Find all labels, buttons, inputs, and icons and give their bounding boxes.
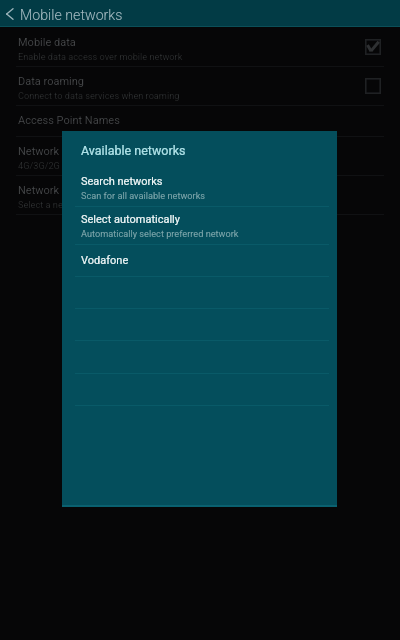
staticText: Mobile data: [18, 36, 76, 49]
staticText: Connect to data services when roaming: [18, 90, 180, 101]
button[interactable]: Unchecked checkbox: [362, 75, 384, 97]
button[interactable]: Access Point Names: [0, 106, 400, 136]
staticText: Automatically select preferred network: [81, 228, 239, 239]
staticText: Data roaming: [18, 75, 84, 88]
button[interactable]: Data roaming: [0, 67, 400, 105]
staticText: Scan for all available networks: [81, 190, 206, 201]
staticText: Select automatically: [81, 213, 180, 226]
staticText: 4G/3G/2G (auto connect): [18, 160, 122, 171]
button[interactable]: Search networks: [62, 168, 337, 206]
button[interactable]: Select automatically: [62, 206, 337, 244]
staticText: Mobile networks: [20, 7, 123, 24]
button[interactable]: Navigate up: [0, 0, 21, 27]
staticText: Enable data access over mobile network: [18, 51, 183, 62]
button[interactable]: Network operators: [0, 176, 400, 214]
button[interactable]: Mobile data: [0, 28, 400, 66]
button[interactable]: Checked checkbox: [362, 36, 384, 58]
button[interactable]: Network mode: [0, 137, 400, 175]
staticText: Vodafone: [81, 254, 129, 267]
staticText: Access Point Names: [18, 114, 120, 127]
staticText: Network operators: [18, 184, 109, 197]
staticText: Available networks: [81, 143, 186, 158]
button[interactable]: Vodafone: [62, 244, 337, 276]
staticText: Search networks: [81, 175, 163, 188]
staticText: Select a network operator: [18, 199, 123, 210]
staticText: Network mode: [18, 145, 90, 158]
